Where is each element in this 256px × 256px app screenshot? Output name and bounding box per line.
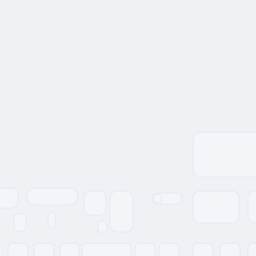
button[interactable]: Badge [98,221,107,232]
button[interactable]: Key 7 [193,243,213,256]
button[interactable]: Small control [14,214,26,231]
button[interactable]: Stepper [48,212,55,228]
button[interactable]: Key 8 [220,243,240,256]
button[interactable]: Key 2 [8,243,28,256]
button[interactable]: Key 4 [60,243,79,256]
button[interactable]: Key 6 [159,243,179,256]
button[interactable]: Key 5 [135,243,155,256]
button[interactable]: Key 9 [248,243,256,256]
button[interactable]: Secondary action [248,191,256,223]
button[interactable]: Option [84,191,106,215]
button[interactable]: Toggle [152,193,182,204]
button[interactable]: Key 3 [34,243,54,256]
button[interactable]: Key 1 [0,243,2,256]
